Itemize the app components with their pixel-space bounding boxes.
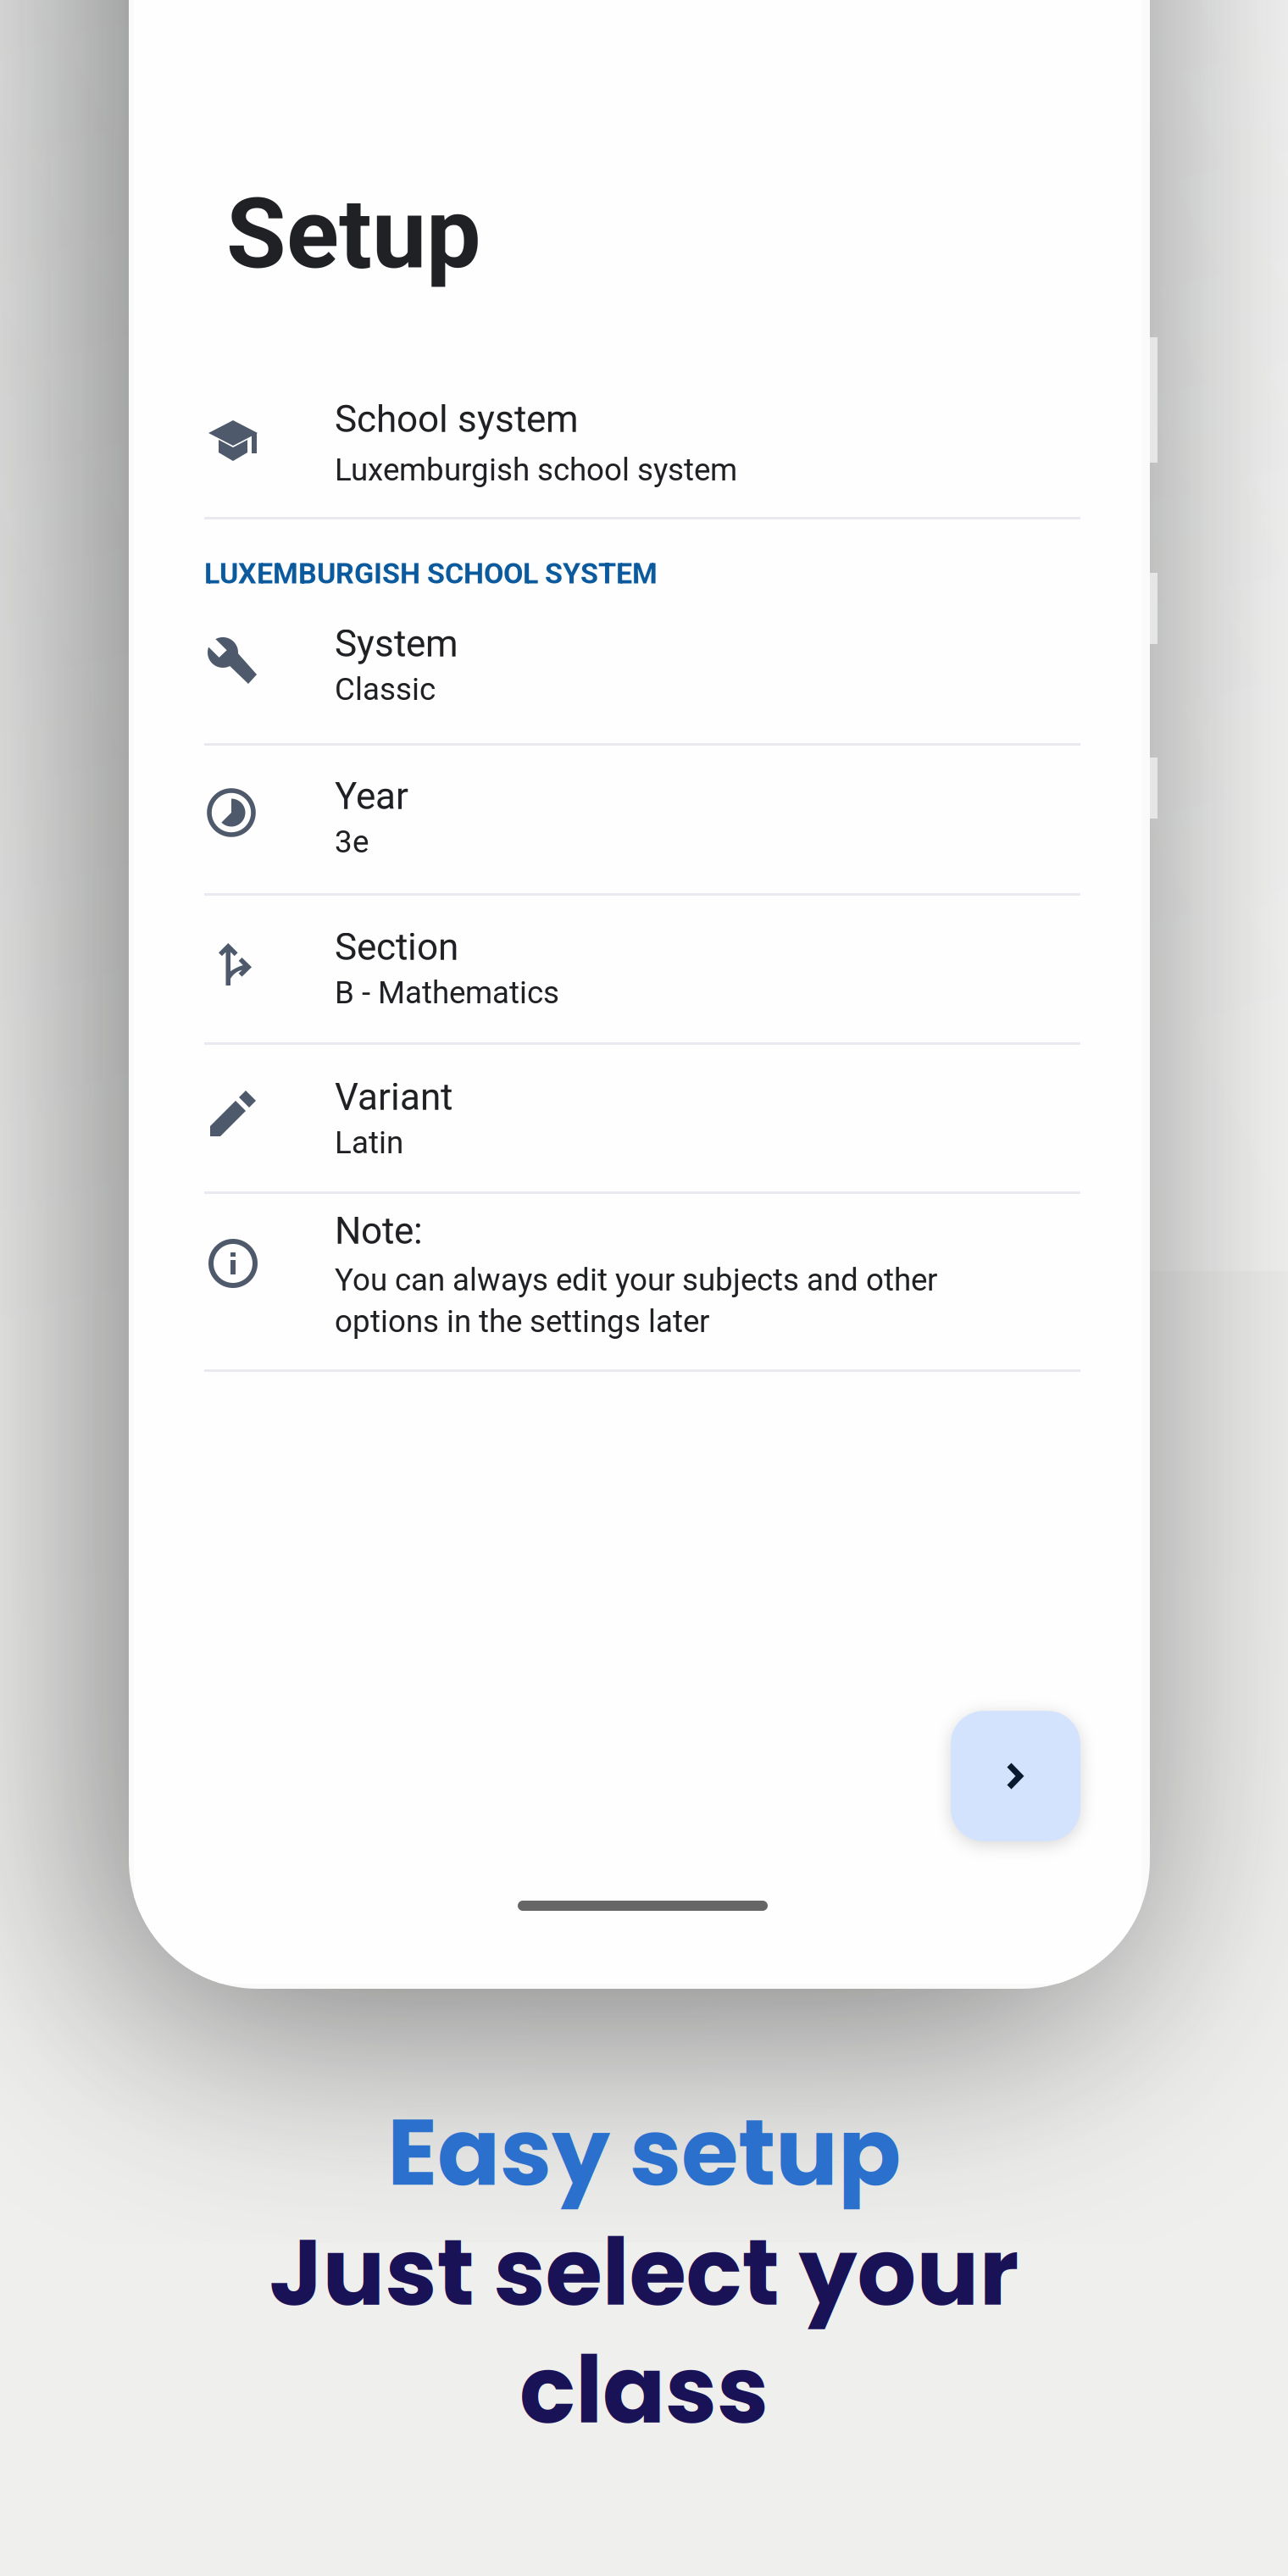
staticText: Note: <box>335 1209 423 1253</box>
staticText: Latin <box>335 1124 403 1161</box>
staticText: class <box>519 2325 769 2455</box>
button[interactable]: School system <box>134 382 1141 514</box>
button[interactable]: Variant <box>134 1055 1141 1204</box>
staticText: Easy setup <box>387 2087 901 2217</box>
button[interactable]: Section <box>134 905 1141 1054</box>
staticText: You can always edit your subjects and ot… <box>335 1262 937 1298</box>
staticText: B - Mathematics <box>335 974 559 1011</box>
staticText: Just select your <box>269 2207 1019 2337</box>
staticText: Variant <box>335 1075 452 1119</box>
staticText: School system <box>335 397 579 441</box>
button[interactable]: System <box>134 602 1141 751</box>
staticText: Luxemburgish school system <box>335 452 737 488</box>
staticText: options in the settings later <box>335 1303 709 1340</box>
button[interactable]: Continue <box>951 1711 1080 1841</box>
staticText: Section <box>335 925 458 969</box>
button[interactable]: Year <box>134 754 1141 903</box>
staticText: Classic <box>335 671 436 708</box>
staticText: 3e <box>335 824 369 860</box>
staticText: System <box>335 622 458 666</box>
staticText: Setup <box>226 177 481 291</box>
staticText: Year <box>335 774 408 818</box>
staticText: LUXEMBURGISH SCHOOL SYSTEM <box>204 557 658 590</box>
